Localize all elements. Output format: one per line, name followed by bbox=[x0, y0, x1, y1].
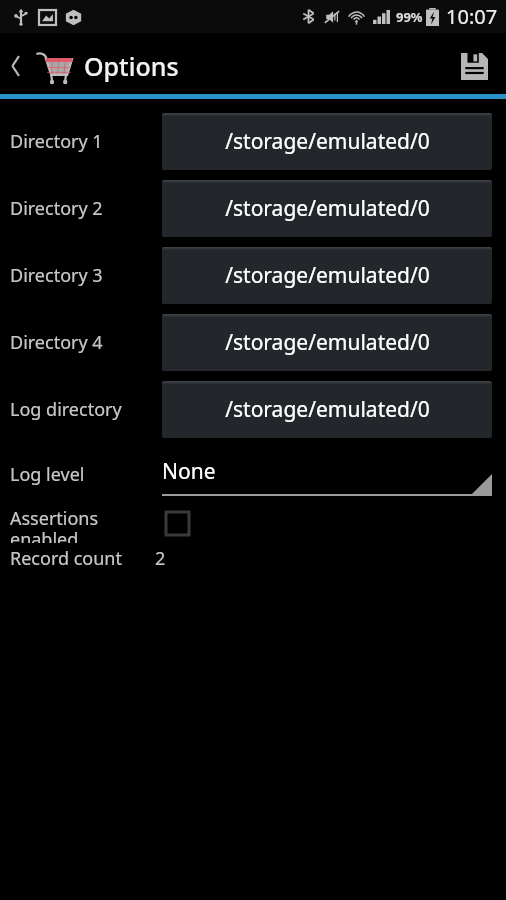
button[interactable]: Save bbox=[443, 53, 506, 80]
staticText: Log directory bbox=[10, 397, 162, 422]
staticText: Assertions enabled bbox=[10, 506, 162, 543]
staticText: Log level bbox=[10, 462, 162, 487]
button[interactable]: /storage/emulated/0 bbox=[162, 113, 492, 170]
staticText: None bbox=[162, 457, 216, 486]
staticText: Record count bbox=[10, 546, 155, 571]
button[interactable]: /storage/emulated/0 bbox=[162, 314, 492, 371]
button[interactable]: Navigate up bbox=[4, 46, 185, 86]
staticText: Directory 4 bbox=[10, 330, 162, 355]
staticText: Directory 2 bbox=[10, 196, 162, 221]
staticText: Directory 1 bbox=[10, 129, 162, 154]
button[interactable]: Assertions enabled checkbox bbox=[166, 512, 189, 535]
staticText: 99% bbox=[396, 8, 423, 26]
staticText: /storage/emulated/0 bbox=[225, 127, 430, 156]
button[interactable]: /storage/emulated/0 bbox=[162, 180, 492, 237]
staticText: Options bbox=[84, 49, 179, 83]
staticText: /storage/emulated/0 bbox=[225, 395, 430, 424]
staticText: Directory 3 bbox=[10, 263, 162, 288]
button[interactable]: /storage/emulated/0 bbox=[162, 381, 492, 438]
staticText: /storage/emulated/0 bbox=[225, 261, 430, 290]
staticText: 2 bbox=[155, 546, 166, 571]
button[interactable]: None bbox=[162, 448, 492, 500]
staticText: /storage/emulated/0 bbox=[225, 328, 430, 357]
staticText: 10:07 bbox=[446, 3, 498, 30]
button[interactable]: /storage/emulated/0 bbox=[162, 247, 492, 304]
staticText: /storage/emulated/0 bbox=[225, 194, 430, 223]
